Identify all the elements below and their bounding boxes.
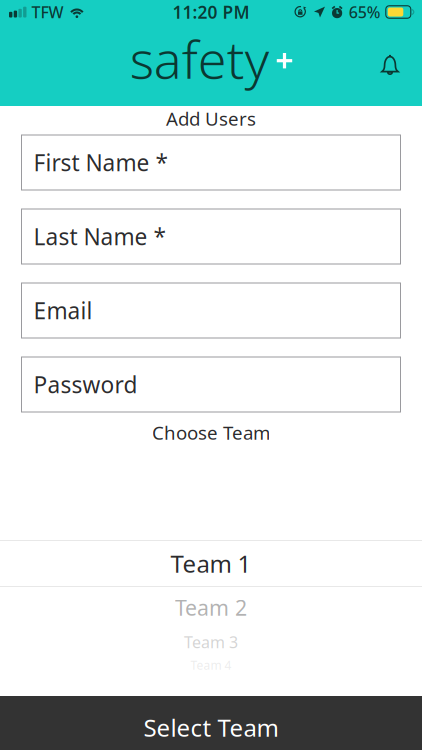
staticText: Select Team — [143, 712, 278, 743]
staticText: First Name * — [33, 147, 167, 177]
staticText: Email — [33, 295, 92, 325]
staticText: Team 4 — [190, 657, 231, 673]
staticText: Last Name * — [33, 221, 165, 251]
staticText: Team 2 — [175, 593, 247, 622]
staticText: Password — [33, 369, 137, 399]
staticText: Team 1 — [170, 548, 251, 579]
staticText: Choose Team — [152, 420, 270, 445]
staticText: safety — [130, 24, 269, 93]
staticText: 11:20 PM — [172, 0, 249, 23]
staticText: 65% — [349, 1, 381, 23]
staticText: Team 3 — [184, 631, 238, 653]
button[interactable]: Select Team — [0, 696, 422, 750]
button[interactable]: Notifications — [367, 43, 413, 87]
staticText: Add Users — [166, 106, 256, 131]
staticText: TFW — [31, 1, 63, 23]
